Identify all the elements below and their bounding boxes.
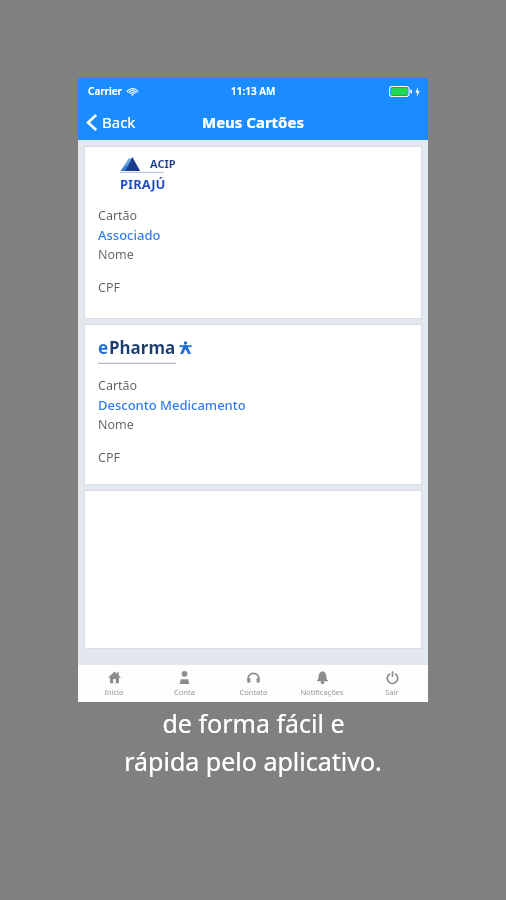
button[interactable]: e: [84, 324, 422, 485]
staticText: de forma fácil e: [162, 706, 345, 740]
staticText: Carrier: [88, 84, 122, 98]
staticText: Back: [102, 112, 136, 132]
staticText: Pharma: [109, 336, 176, 359]
button[interactable]: Contato: [220, 665, 286, 702]
staticText: Associado: [98, 226, 161, 244]
button[interactable]: Back: [78, 104, 148, 140]
staticText: Nome: [98, 246, 134, 263]
staticText: CPF: [98, 279, 120, 296]
staticText: Desconto Medicamento: [98, 396, 246, 414]
staticText: Nome: [98, 416, 134, 433]
staticText: PIRAJÚ: [120, 175, 166, 193]
button[interactable]: ACIP: [84, 146, 422, 319]
staticText: 11:13 AM: [231, 84, 276, 98]
staticText: e: [98, 336, 109, 359]
staticText: Cartão: [98, 377, 138, 394]
button[interactable]: [84, 490, 422, 649]
staticText: Conta: [174, 687, 195, 697]
button[interactable]: Início: [81, 665, 147, 702]
button[interactable]: Conta: [151, 665, 217, 702]
staticText: Sair: [385, 687, 399, 697]
button[interactable]: Notificações: [289, 665, 355, 702]
staticText: Início: [104, 687, 124, 697]
staticText: Meus Cartões: [202, 112, 304, 132]
staticText: Notificações: [300, 687, 344, 697]
staticText: rápida pelo aplicativo.: [124, 744, 382, 778]
button[interactable]: Sair: [359, 665, 425, 702]
staticText: Contato: [239, 687, 268, 697]
staticText: ACIP: [150, 156, 176, 171]
staticText: Cartão: [98, 207, 138, 224]
staticText: CPF: [98, 449, 120, 466]
